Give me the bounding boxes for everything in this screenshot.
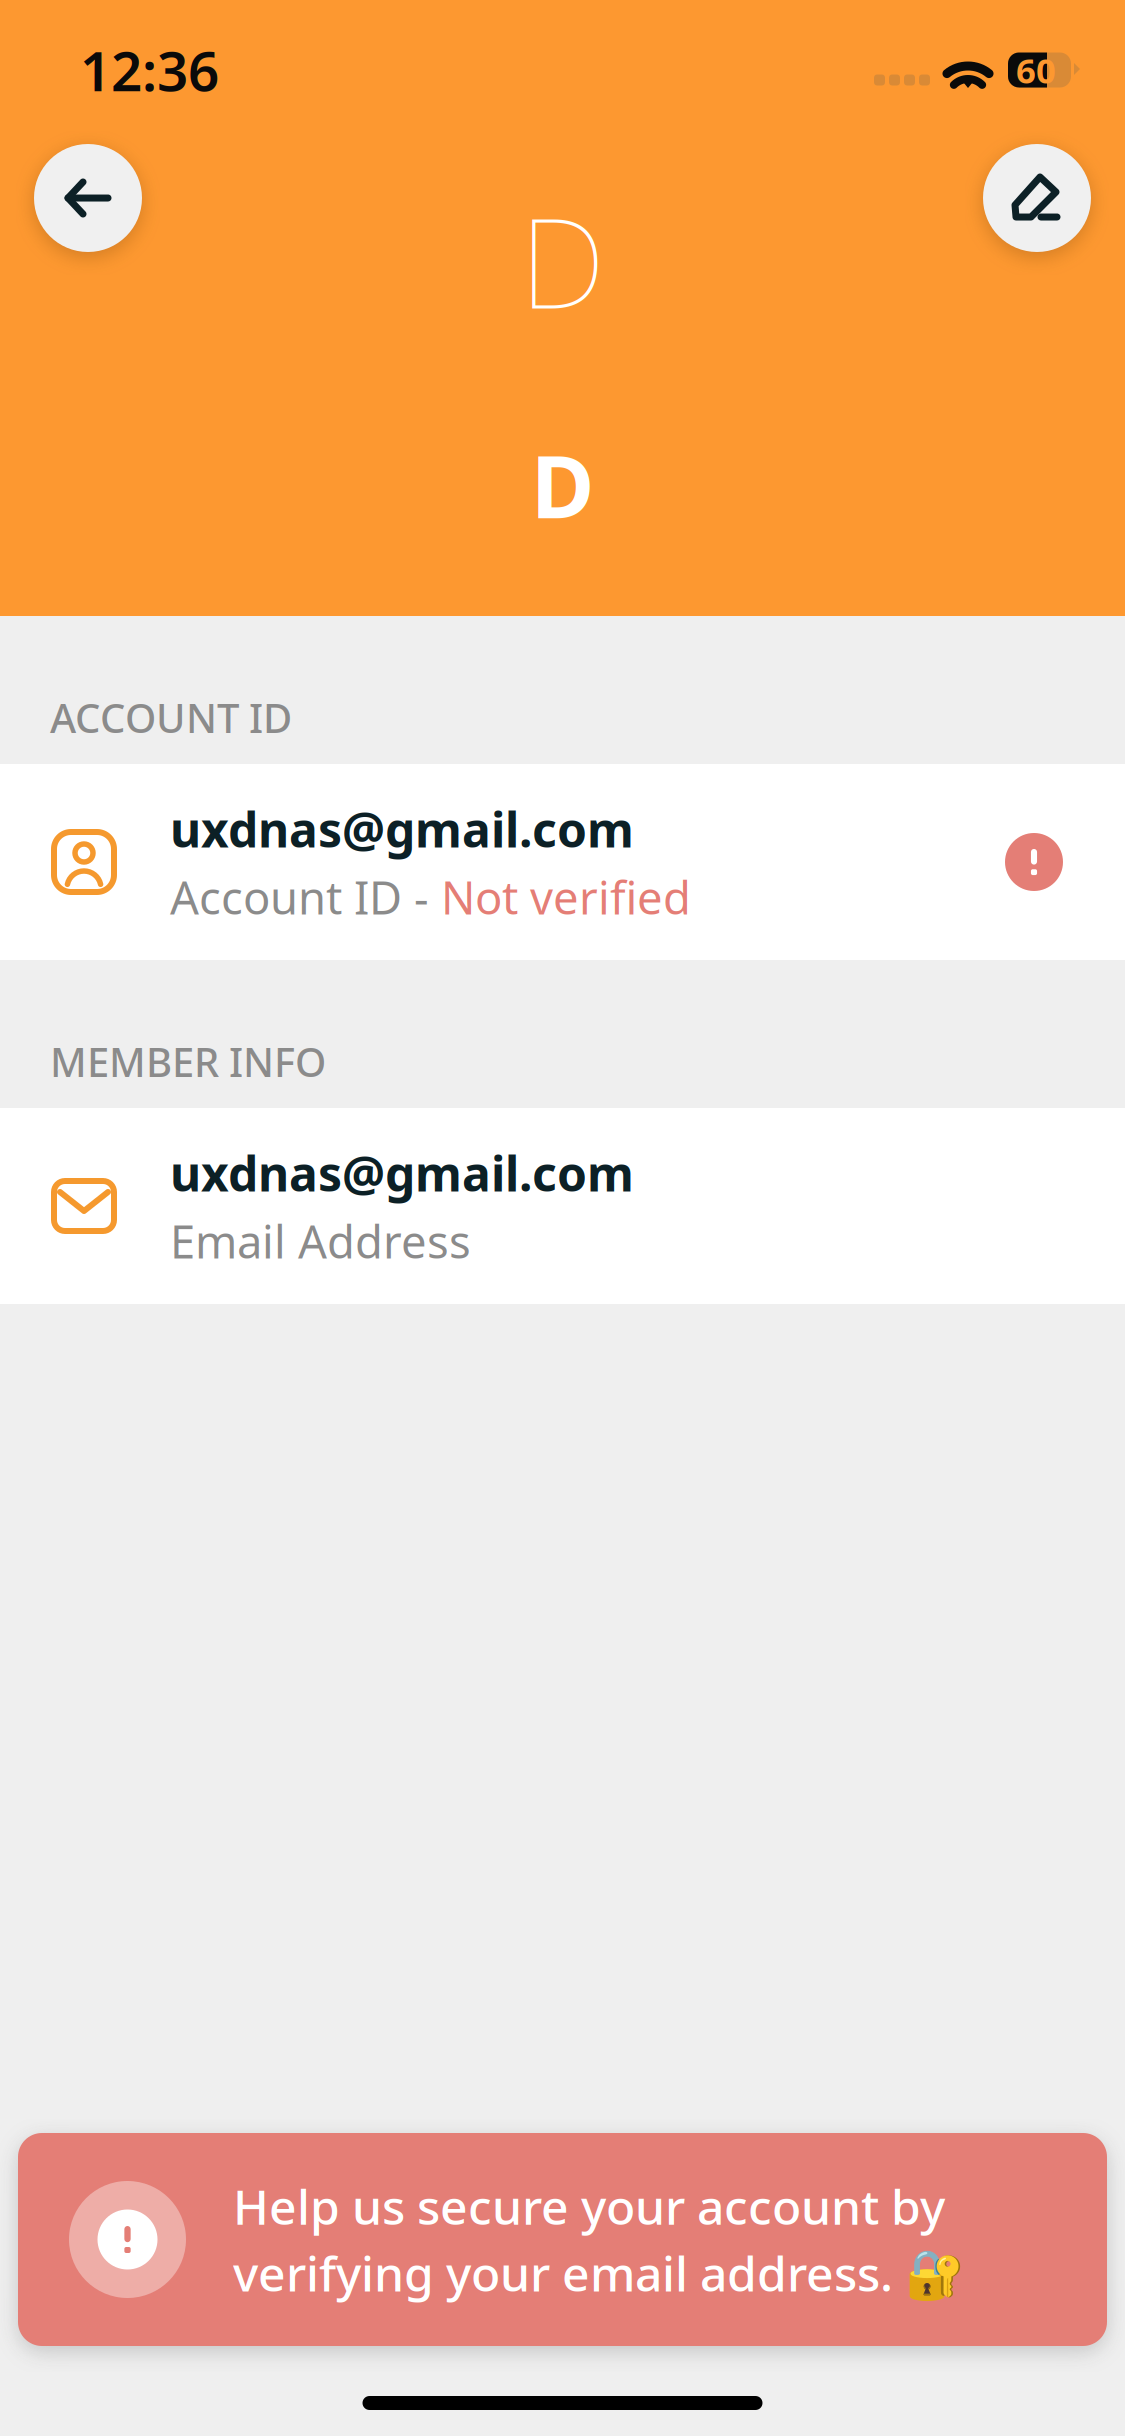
staticText: D	[531, 427, 594, 542]
button[interactable]: Help us secure your account by	[18, 2133, 1107, 2346]
staticText: MEMBER INFO	[50, 1035, 326, 1088]
staticText: D	[519, 178, 605, 343]
staticText: uxdnas@gmail.com	[170, 797, 634, 861]
button[interactable]: uxdnas@gmail.com	[0, 1108, 1125, 1304]
staticText: ACCOUNT ID	[50, 691, 292, 744]
staticText: Email Address	[170, 1211, 471, 1271]
staticText: Not verified	[441, 867, 691, 927]
staticText: 60	[1016, 47, 1056, 93]
button[interactable]: uxdnas@gmail.com	[0, 764, 1125, 960]
staticText: Account ID -	[170, 867, 441, 927]
button[interactable]: Back	[34, 144, 142, 252]
staticText: verifying your email address. 🔐	[233, 2241, 965, 2305]
button[interactable]: Edit	[983, 144, 1091, 252]
staticText: 12:36	[80, 34, 219, 106]
staticText: uxdnas@gmail.com	[170, 1141, 634, 1205]
staticText: Help us secure your account by	[233, 2174, 945, 2238]
